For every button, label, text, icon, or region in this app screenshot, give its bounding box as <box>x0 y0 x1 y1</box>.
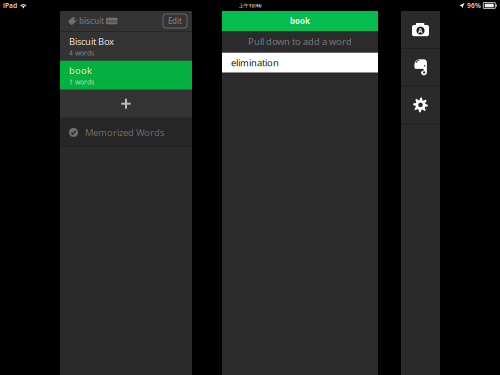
staticText: 1 words <box>69 77 94 86</box>
staticText: biscuit <box>79 16 104 26</box>
staticText: A <box>418 26 423 35</box>
staticText: elimination <box>231 56 279 69</box>
staticText: 上午10:46 <box>238 2 261 9</box>
staticText: Memorized Words <box>85 126 164 139</box>
staticText: beta <box>107 18 116 24</box>
staticText: 4 words <box>69 48 94 57</box>
button[interactable]: Edit <box>163 14 187 28</box>
staticText: Edit <box>168 16 182 26</box>
button[interactable]: book <box>60 61 192 90</box>
staticText: book <box>290 16 310 26</box>
button[interactable]: Scan text with camera <box>401 11 440 48</box>
staticText: iPad <box>3 1 17 10</box>
button[interactable]: Settings <box>401 86 440 123</box>
staticText: 96% <box>467 1 481 10</box>
staticText: book <box>69 64 92 76</box>
button[interactable]: Biscuit Box <box>60 32 192 61</box>
staticText: Pull down to add a word <box>248 35 352 48</box>
button[interactable]: elimination <box>222 53 378 73</box>
button[interactable]: Evernote <box>401 49 440 86</box>
button[interactable]: Add word book <box>60 90 192 118</box>
staticText: Biscuit Box <box>69 35 114 47</box>
button[interactable]: Memorized Words <box>60 118 192 146</box>
